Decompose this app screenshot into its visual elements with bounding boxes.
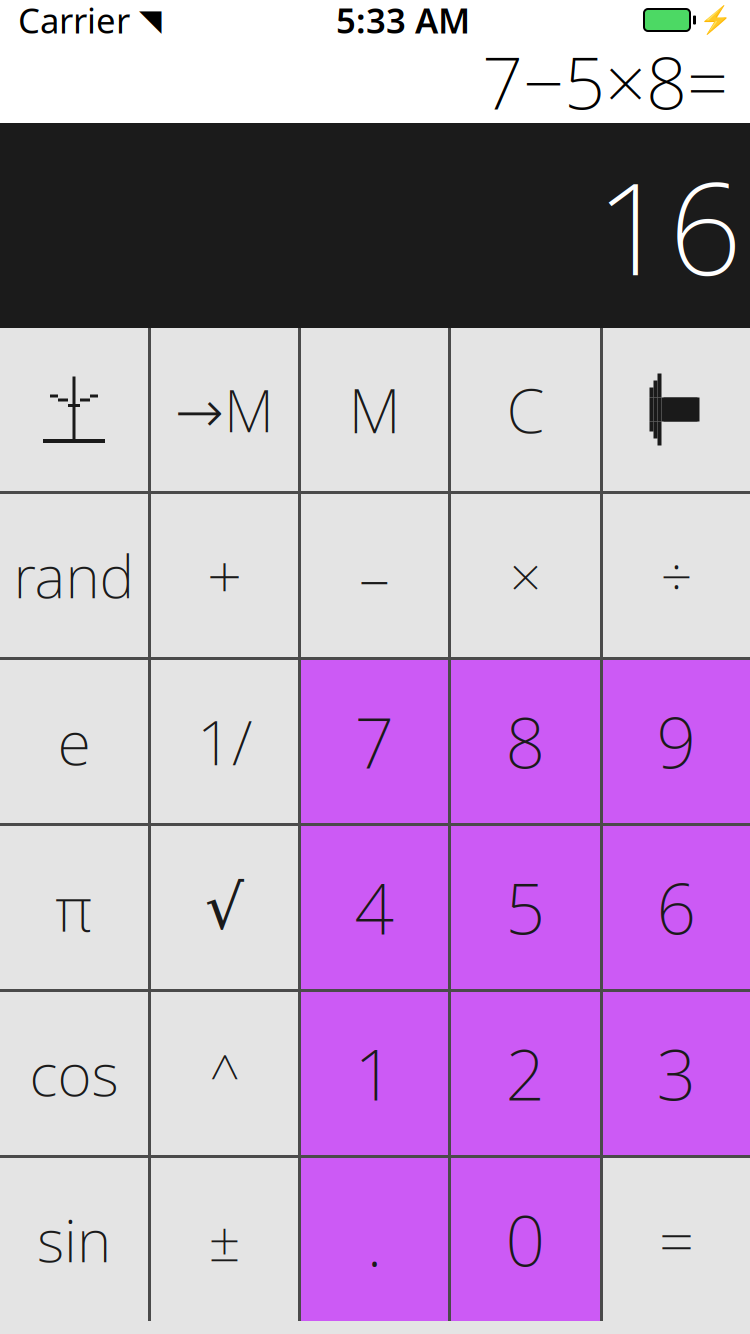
staticText: 8 [505,695,545,788]
button[interactable]: √ [151,826,298,989]
button[interactable]: 1/ [151,660,298,823]
staticText: 4 [354,861,394,954]
button[interactable]: e [0,660,148,823]
button[interactable]: . [301,1158,448,1321]
staticText: . [366,1193,382,1286]
staticText: ^ [209,1038,239,1109]
staticText: + [207,535,242,616]
button[interactable]: C [451,328,600,491]
staticText: – [359,535,390,616]
staticText: π [55,867,92,948]
button[interactable]: →M [151,328,298,491]
button[interactable]: sin [0,1158,148,1321]
button[interactable]: cos [0,992,148,1155]
button[interactable]: 5 [451,826,600,989]
staticText: 5 [505,861,545,954]
staticText: 6 [656,861,696,954]
staticText: 3 [656,1027,696,1120]
staticText: 9 [656,695,696,788]
staticText: = [659,1199,694,1280]
button[interactable]: 1 [301,992,448,1155]
button[interactable]: Function graph [0,328,148,491]
staticText: →M [175,370,274,448]
staticText: Carrier [18,0,130,43]
button[interactable]: π [0,826,148,989]
staticText: 0 [505,1193,545,1286]
staticText: C [506,369,544,450]
staticText: 7 [354,695,394,788]
button[interactable]: 4 [301,826,448,989]
staticText: 16 [596,140,742,310]
button[interactable]: 9 [603,660,750,823]
staticText: e [57,701,90,782]
staticText: ◥ [139,3,162,37]
button[interactable]: Backspace [603,328,750,491]
button[interactable]: 6 [603,826,750,989]
staticText: × [509,538,541,613]
staticText: 1/ [197,701,252,782]
button[interactable]: ÷ [603,494,750,657]
button[interactable]: 7 [301,660,448,823]
staticText: ÷ [660,538,692,613]
button[interactable]: 3 [603,992,750,1155]
button[interactable]: 2 [451,992,600,1155]
staticText: 1 [354,1027,394,1120]
staticText: ± [208,1202,240,1277]
staticText: M [348,369,400,450]
staticText: cos [29,1034,118,1112]
staticText: 2 [505,1027,545,1120]
button[interactable]: rand [0,494,148,657]
button[interactable]: ± [151,1158,298,1321]
button[interactable]: × [451,494,600,657]
button[interactable]: – [301,494,448,657]
button[interactable]: M [301,328,448,491]
button[interactable]: + [151,494,298,657]
staticText: ⚡ [699,5,732,35]
button[interactable]: 8 [451,660,600,823]
button[interactable]: ^ [151,992,298,1155]
staticText: rand [13,536,134,614]
staticText: 7−5×8= [482,34,728,129]
staticText: sin [37,1200,111,1278]
staticText: 5:33 AM [336,0,470,43]
button[interactable]: 0 [451,1158,600,1321]
staticText: √ [205,873,244,942]
button[interactable]: = [603,1158,750,1321]
